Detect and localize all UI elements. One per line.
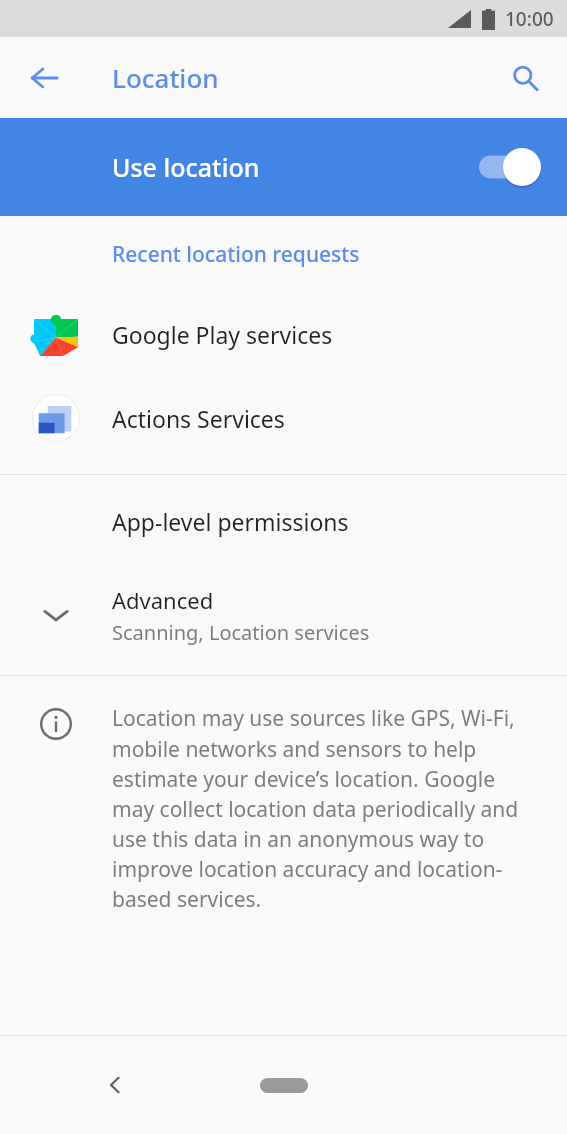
button[interactable]: Home — [244, 1068, 324, 1102]
button[interactable]: Advanced — [0, 567, 567, 663]
staticText: Scanning, Location services — [112, 619, 370, 646]
button[interactable]: App-level permissions — [0, 475, 567, 567]
button[interactable]: Back — [16, 50, 72, 106]
button[interactable]: Actions Services — [0, 376, 567, 460]
button[interactable]: Google Play services — [0, 292, 567, 376]
staticText: 10:00 — [505, 6, 554, 32]
button[interactable]: Use location — [0, 118, 567, 216]
staticText: App-level permissions — [112, 506, 349, 537]
button[interactable]: Search — [497, 50, 553, 106]
button[interactable]: Back — [88, 1058, 142, 1112]
staticText: Recent location requests — [112, 240, 360, 269]
staticText: Use location — [112, 150, 479, 184]
staticText: Google Play services — [112, 319, 333, 350]
staticText: Location — [112, 60, 219, 95]
staticText: Location may use sources like GPS, Wi-Fi… — [112, 704, 531, 913]
staticText: Actions Services — [112, 403, 285, 434]
staticText: Advanced — [112, 585, 214, 615]
